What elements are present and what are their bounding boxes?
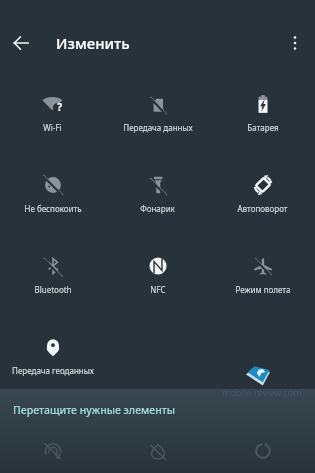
staticText: Автоповорот (237, 203, 288, 214)
button[interactable]: Передача данных (105, 71, 210, 152)
staticText: Фонарик (140, 203, 175, 214)
staticText: Изменить (56, 33, 130, 53)
button[interactable]: Data saver off (139, 432, 177, 470)
button[interactable]: Передача геоданных (0, 314, 105, 395)
button[interactable]: NFC (105, 233, 210, 314)
button[interactable]: Back (2, 24, 40, 62)
button[interactable]: Автоповорот (210, 152, 315, 233)
button[interactable]: ? (0, 71, 105, 152)
staticText: Режим полета (235, 284, 291, 295)
staticText: Батарея (247, 122, 279, 133)
button[interactable]: Батарея (210, 71, 315, 152)
staticText: Перетащите нужные элементы (13, 403, 176, 417)
staticText: Bluetooth (34, 284, 72, 295)
staticText: mobile-review.com (222, 386, 302, 398)
staticText: NFC (150, 284, 166, 295)
staticText: Передача данных (123, 122, 193, 133)
button[interactable]: Sync (244, 432, 282, 470)
staticText: ? (57, 99, 63, 114)
staticText: Не беспокоить (24, 203, 82, 214)
button[interactable]: Screen cast off (34, 432, 72, 470)
button[interactable]: Режим полета (210, 233, 315, 314)
button[interactable]: Не беспокоить (0, 152, 105, 233)
button[interactable]: More options (278, 26, 312, 60)
staticText: Передача геоданных (12, 365, 94, 376)
button[interactable]: Фонарик (105, 152, 210, 233)
staticText: Wi-Fi (43, 122, 62, 133)
button[interactable]: Bluetooth (0, 233, 105, 314)
